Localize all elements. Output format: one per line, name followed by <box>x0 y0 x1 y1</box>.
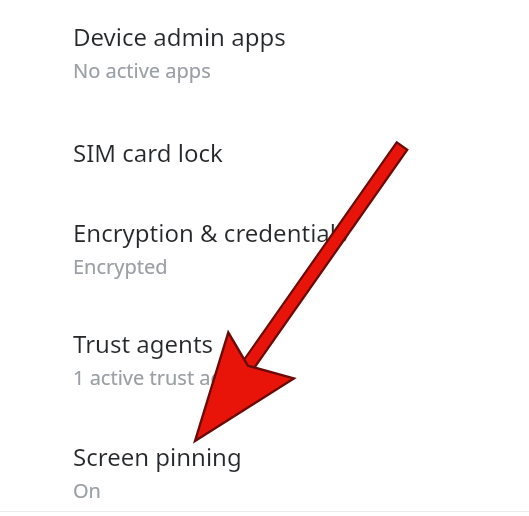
staticText: Encrypted <box>73 253 168 280</box>
button[interactable]: Trust agents <box>0 327 529 391</box>
button[interactable]: Device admin apps <box>0 0 529 84</box>
staticText: Screen pinning <box>73 440 242 473</box>
button[interactable]: Screen pinning <box>0 440 529 504</box>
staticText: 1 active trust agent <box>73 364 254 391</box>
staticText: On <box>73 477 101 504</box>
button[interactable]: SIM card lock <box>0 136 529 169</box>
other: Annotation arrow pointing to Screen pinn… <box>0 0 529 516</box>
staticText: SIM card lock <box>73 136 223 169</box>
staticText: Device admin apps <box>73 20 286 53</box>
staticText: No active apps <box>73 57 211 84</box>
staticText: Trust agents <box>73 327 214 360</box>
staticText: Encryption & credentials <box>73 216 348 249</box>
button[interactable]: Encryption & credentials <box>0 216 529 280</box>
